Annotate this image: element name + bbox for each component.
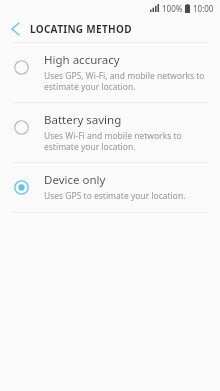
- staticText: Uses GPS, Wi-Fi, and mobile networks to …: [44, 70, 206, 92]
- staticText: High accuracy: [44, 52, 120, 68]
- staticText: Uses GPS to estimate your location.: [44, 190, 186, 202]
- button[interactable]: Battery saving: [0, 103, 220, 162]
- staticText: 100%: [162, 3, 183, 14]
- staticText: LOCATING METHOD: [30, 22, 132, 36]
- staticText: Battery saving: [44, 112, 122, 128]
- staticText: Uses Wi-Fi and mobile networks to estima…: [44, 130, 206, 152]
- button[interactable]: Back: [0, 16, 30, 42]
- staticText: 10:00: [193, 3, 214, 14]
- staticText: Device only: [44, 172, 106, 188]
- button[interactable]: Device only: [0, 163, 220, 212]
- button[interactable]: High accuracy: [0, 43, 220, 102]
